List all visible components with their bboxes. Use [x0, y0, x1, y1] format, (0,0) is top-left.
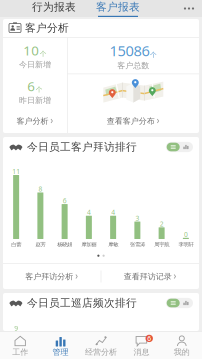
staticText: 3 — [135, 214, 139, 222]
staticText: 6 — [147, 334, 151, 343]
staticText: 白蕾 — [11, 241, 21, 248]
staticText: 杨晓娟 — [57, 241, 72, 248]
button[interactable]: 经营分析 — [81, 331, 121, 359]
staticText: 管理 — [53, 347, 69, 357]
button[interactable]: 我的 — [162, 331, 202, 359]
staticText: 我的 — [174, 347, 190, 357]
staticText: 个 — [40, 50, 47, 58]
staticText: 摩敏 — [108, 241, 118, 248]
staticText: 今日新增 — [19, 60, 51, 69]
button[interactable]: 切换显示方式 — [166, 298, 193, 308]
staticText: 5 — [63, 347, 67, 356]
staticText: 赵芳 — [35, 241, 45, 248]
staticText: 行为报表 — [32, 0, 76, 14]
staticText: 查看客户分布 — [107, 116, 155, 126]
staticText: 11 — [12, 167, 20, 176]
staticText: 客户分析 — [16, 116, 48, 126]
button[interactable]: 更多 — [176, 0, 202, 17]
staticText: 客户拜访分析 — [25, 272, 73, 281]
staticText: 4 — [87, 353, 91, 359]
staticText: 个 — [36, 85, 43, 94]
button[interactable]: 工作 — [0, 331, 40, 359]
staticText: 4 — [111, 208, 115, 217]
button[interactable]: 客户报表 — [89, 0, 147, 17]
staticText: 今日员工客户拜访排行 — [27, 140, 137, 153]
button[interactable]: 查看拜访记录 — [101, 264, 199, 288]
staticText: 摩加丽 — [81, 241, 96, 248]
staticText: 6 — [63, 196, 67, 205]
staticText: 客户报表 — [96, 0, 140, 14]
staticText: 客户总数 — [117, 61, 149, 70]
staticText: 4 — [87, 208, 91, 217]
staticText: 15086 — [110, 41, 150, 60]
staticText: 李明轩 — [178, 241, 193, 248]
staticText: 2 — [160, 219, 164, 228]
staticText: 6 — [27, 77, 35, 95]
staticText: 查看拜访记录 — [124, 272, 172, 281]
button[interactable]: 客户拜访分析 — [3, 264, 101, 288]
staticText: 0 — [184, 230, 188, 239]
button[interactable]: 查看客户分布 — [68, 109, 199, 133]
staticText: 个 — [150, 51, 157, 59]
staticText: 9 — [14, 324, 18, 333]
staticText: 张雪涛 — [130, 241, 145, 248]
staticText: 客户分析 — [25, 21, 69, 34]
button[interactable]: 行为报表 — [25, 0, 83, 17]
staticText: 周宇航 — [154, 241, 169, 248]
staticText: 消息 — [133, 347, 149, 357]
staticText: 工作 — [12, 347, 28, 357]
staticText: 今日员工巡店频次排行 — [27, 296, 137, 309]
staticText: 经营分析 — [85, 347, 117, 357]
button[interactable]: 6 — [121, 331, 162, 359]
staticText: 昨日新增 — [19, 95, 51, 105]
button[interactable]: 切换显示方式 — [166, 142, 193, 152]
staticText: 8 — [38, 184, 42, 193]
button[interactable]: 客户分析 — [3, 109, 67, 133]
button[interactable]: 管理 — [40, 331, 81, 359]
staticText: 10 — [23, 41, 39, 59]
